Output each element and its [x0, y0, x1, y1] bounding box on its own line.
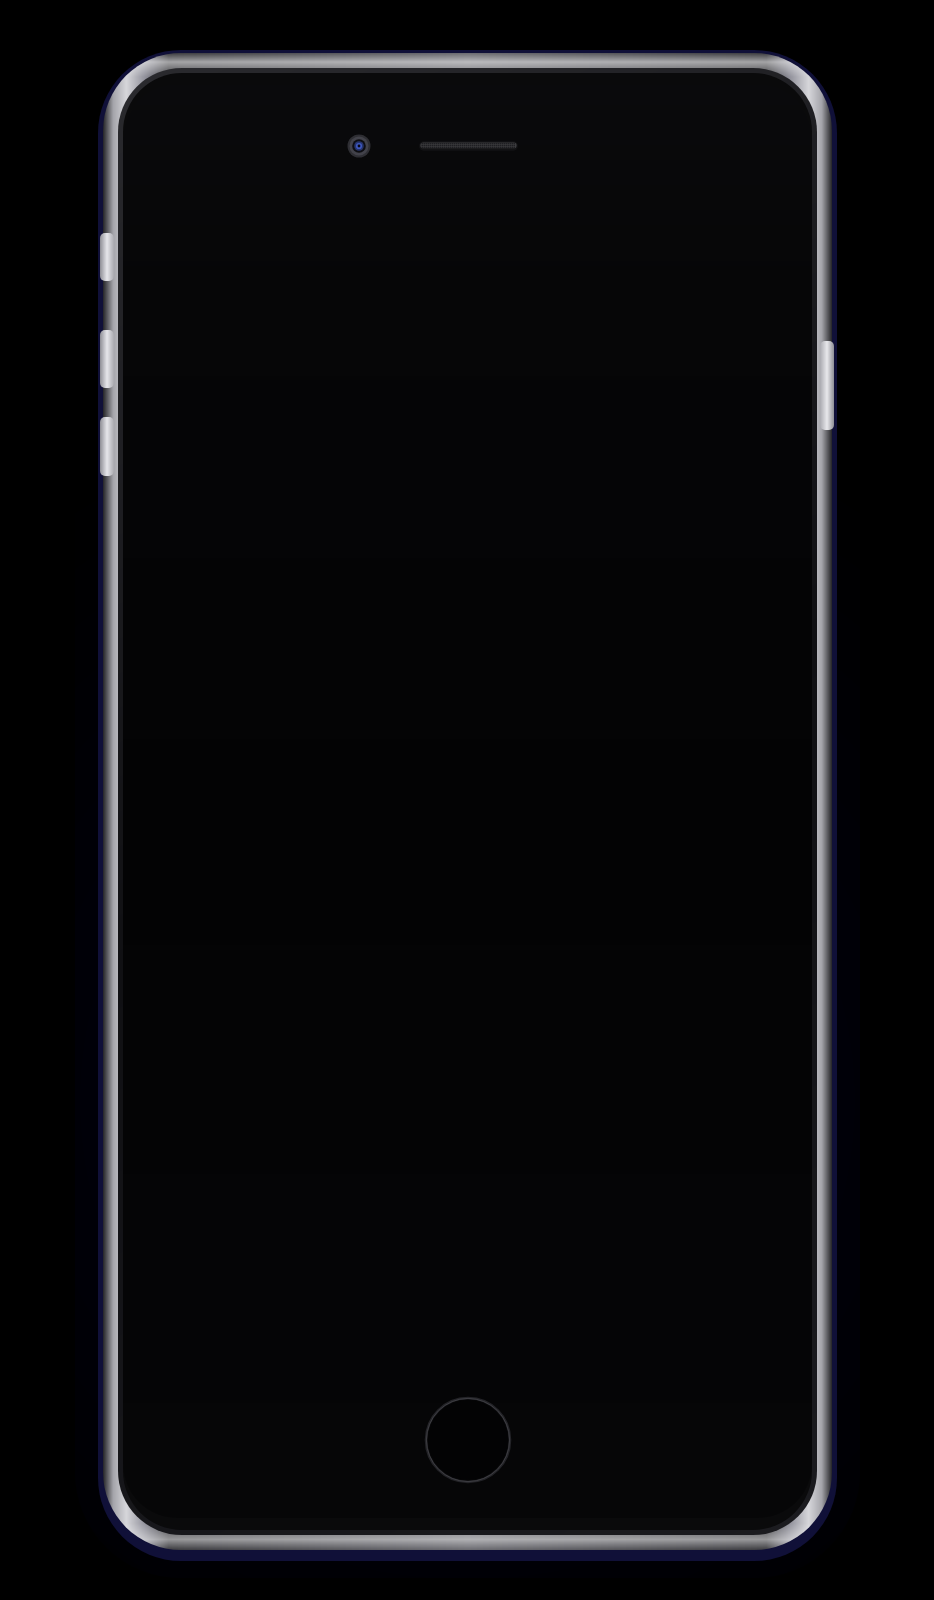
button[interactable]: Power: [820, 341, 834, 430]
button[interactable]: Volume up: [100, 330, 114, 388]
button[interactable]: Volume down: [100, 417, 114, 476]
button[interactable]: Home: [426, 1398, 510, 1482]
button[interactable]: Ring silent switch: [100, 233, 114, 281]
